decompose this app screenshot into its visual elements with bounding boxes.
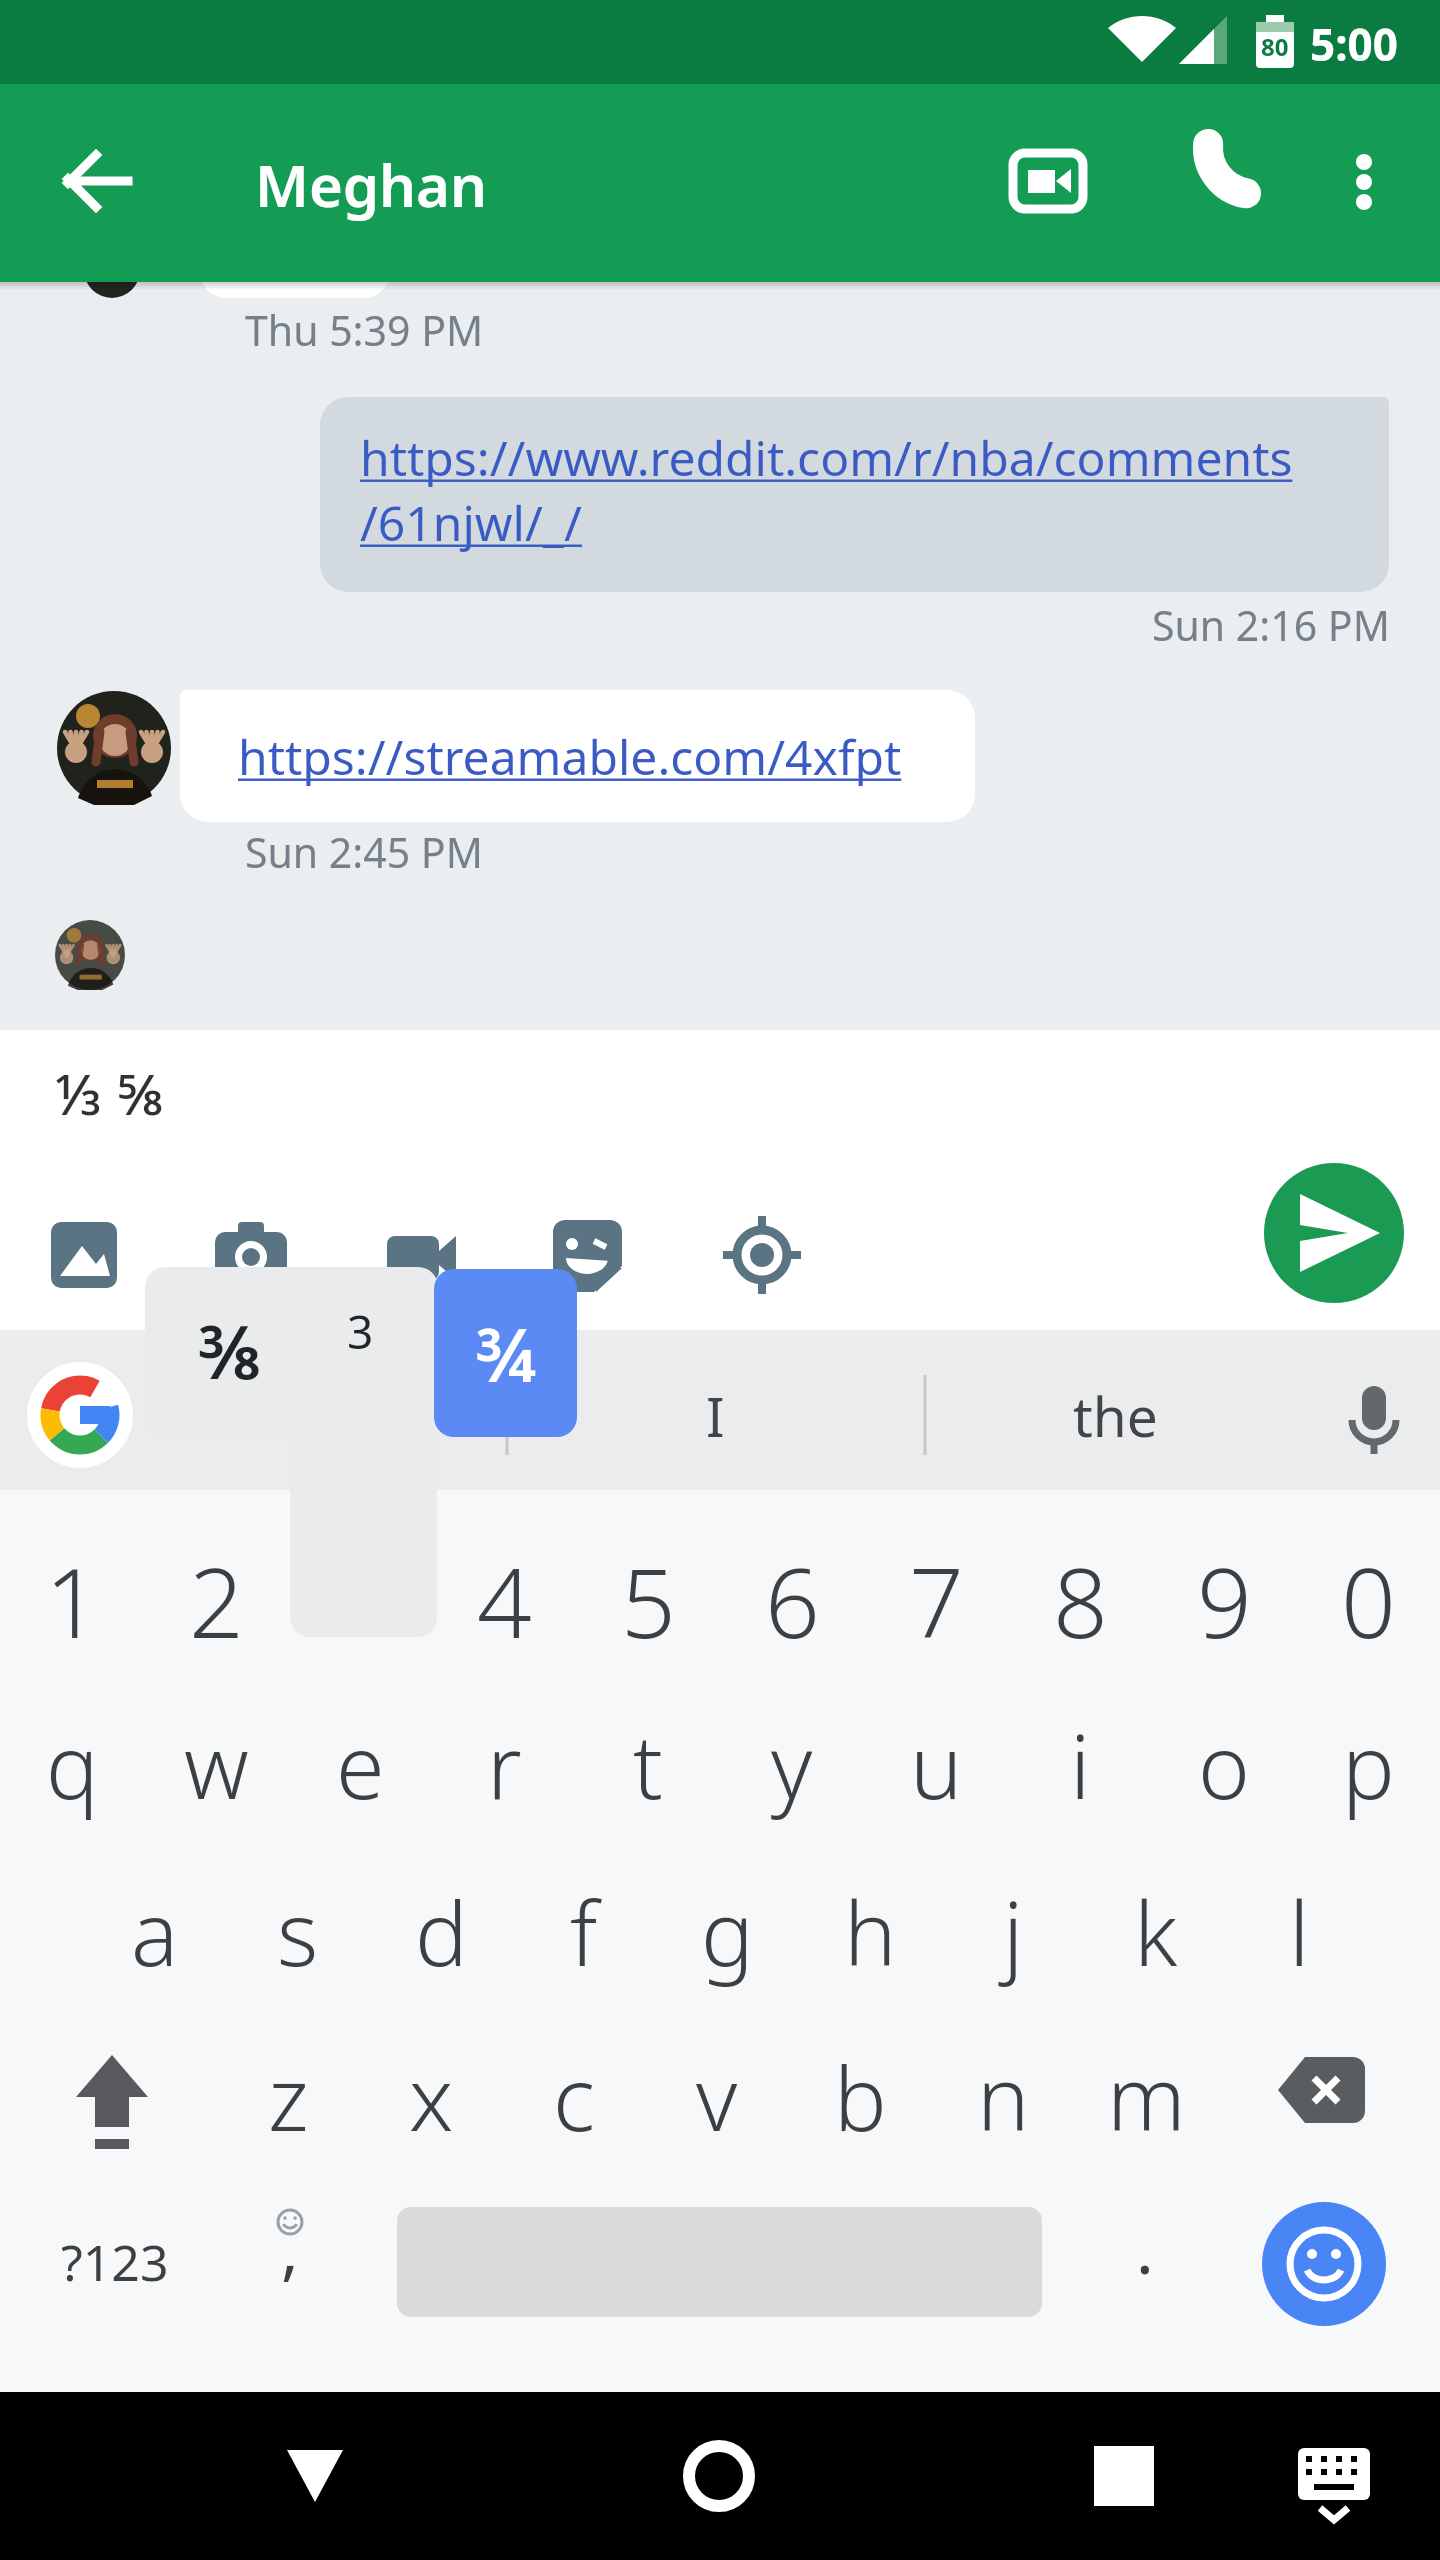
button[interactable]: https://www.reddit.com/r/nba/comments bbox=[320, 397, 1389, 592]
button[interactable] bbox=[931, 2027, 1075, 2167]
staticText: I bbox=[706, 1378, 725, 1453]
button[interactable] bbox=[369, 1862, 513, 2002]
button[interactable] bbox=[1080, 2192, 1210, 2332]
staticText: 80 bbox=[1261, 30, 1289, 63]
staticText: i bbox=[1070, 1705, 1091, 1825]
staticText: 9 bbox=[1197, 1535, 1252, 1666]
button[interactable] bbox=[576, 1695, 720, 1835]
button[interactable] bbox=[1296, 1695, 1440, 1835]
staticText: https://streamable.com/4xfpt bbox=[238, 724, 902, 789]
button[interactable] bbox=[30, 1200, 140, 1310]
button[interactable] bbox=[359, 2027, 503, 2167]
button[interactable] bbox=[40, 2027, 190, 2167]
staticText: 4 bbox=[477, 1535, 532, 1666]
button[interactable] bbox=[1084, 1862, 1228, 2002]
button[interactable] bbox=[196, 1200, 306, 1310]
button[interactable] bbox=[864, 1530, 1008, 1670]
button[interactable] bbox=[216, 2027, 360, 2167]
button[interactable] bbox=[288, 1530, 432, 1670]
button[interactable] bbox=[1152, 1530, 1296, 1670]
button[interactable] bbox=[0, 1695, 144, 1835]
button[interactable] bbox=[1008, 1530, 1152, 1670]
button[interactable] bbox=[144, 1530, 288, 1670]
staticText: 7 bbox=[909, 1535, 964, 1666]
button[interactable] bbox=[1054, 2406, 1194, 2546]
staticText: , bbox=[281, 2203, 299, 2293]
button[interactable] bbox=[600, 1350, 830, 1474]
staticText: Meghan bbox=[255, 145, 488, 224]
button[interactable] bbox=[288, 1695, 432, 1835]
staticText: 2 bbox=[189, 1535, 244, 1666]
button[interactable] bbox=[83, 1862, 227, 2002]
staticText: https://www.reddit.com/r/nba/comments bbox=[360, 425, 1293, 490]
staticText: k bbox=[1134, 1872, 1178, 1992]
staticText: r bbox=[487, 1705, 522, 1825]
staticText: ¾ bbox=[475, 1303, 536, 1404]
button[interactable] bbox=[30, 1360, 134, 1464]
button[interactable] bbox=[245, 2406, 385, 2546]
button[interactable] bbox=[512, 1862, 656, 2002]
staticText: p bbox=[1342, 1705, 1395, 1825]
button[interactable] bbox=[1250, 2027, 1400, 2167]
button[interactable] bbox=[645, 2027, 789, 2167]
button[interactable] bbox=[0, 1530, 144, 1670]
button[interactable] bbox=[144, 1695, 288, 1835]
staticText: Sun 2:45 PM bbox=[245, 824, 483, 880]
button[interactable] bbox=[941, 1862, 1085, 2002]
button[interactable]: ¾ bbox=[434, 1269, 577, 1437]
button[interactable] bbox=[432, 1695, 576, 1835]
button[interactable] bbox=[720, 1530, 864, 1670]
button[interactable] bbox=[720, 1695, 864, 1835]
button[interactable] bbox=[576, 1530, 720, 1670]
button[interactable] bbox=[1000, 1350, 1230, 1474]
staticText: q bbox=[46, 1705, 99, 1825]
staticText: b bbox=[834, 2037, 887, 2157]
staticText: z bbox=[268, 2037, 309, 2157]
button[interactable] bbox=[864, 1695, 1008, 1835]
button[interactable]: https://streamable.com/4xfpt bbox=[180, 690, 975, 822]
button[interactable] bbox=[1264, 2406, 1404, 2546]
staticText: m bbox=[1107, 2037, 1186, 2157]
button[interactable] bbox=[655, 1862, 799, 2002]
staticText: ⅓ ⅝ bbox=[55, 1055, 165, 1125]
staticText: t bbox=[633, 1705, 663, 1825]
button[interactable] bbox=[1310, 1360, 1420, 1464]
staticText: 8 bbox=[1053, 1535, 1108, 1666]
button[interactable] bbox=[1152, 1695, 1296, 1835]
staticText: x bbox=[409, 2037, 454, 2157]
button[interactable] bbox=[1008, 1695, 1152, 1835]
button[interactable] bbox=[649, 2406, 789, 2546]
button[interactable] bbox=[1264, 1163, 1404, 1303]
button[interactable] bbox=[432, 1530, 576, 1670]
staticText: u bbox=[910, 1705, 963, 1825]
button[interactable] bbox=[1227, 1862, 1371, 2002]
button[interactable] bbox=[798, 1862, 942, 2002]
staticText: Sun 2:16 PM bbox=[1152, 597, 1390, 653]
staticText: 5:00 bbox=[1310, 14, 1398, 70]
staticText: 5 bbox=[621, 1535, 676, 1666]
button[interactable] bbox=[40, 124, 160, 244]
button[interactable] bbox=[532, 1200, 642, 1310]
staticText: Thu 5:39 PM bbox=[245, 302, 484, 358]
staticText: . bbox=[1136, 2203, 1154, 2293]
button[interactable] bbox=[988, 122, 1108, 242]
button[interactable] bbox=[362, 1200, 472, 1310]
staticText: /61njwl/_/ bbox=[360, 490, 582, 555]
button[interactable] bbox=[1074, 2027, 1218, 2167]
button[interactable] bbox=[707, 1200, 817, 1310]
button[interactable] bbox=[40, 2192, 190, 2332]
button[interactable] bbox=[225, 2192, 355, 2332]
button[interactable] bbox=[1296, 1530, 1440, 1670]
button[interactable] bbox=[1304, 122, 1424, 242]
button[interactable] bbox=[502, 2027, 646, 2167]
staticText: the bbox=[1073, 1378, 1158, 1453]
staticText: d bbox=[415, 1872, 468, 1992]
staticText: 6 bbox=[765, 1535, 820, 1666]
staticText: s bbox=[277, 1872, 319, 1992]
button[interactable] bbox=[1157, 122, 1277, 242]
button[interactable] bbox=[1262, 2202, 1386, 2326]
staticText: f bbox=[570, 1872, 598, 1992]
button[interactable] bbox=[788, 2027, 932, 2167]
button[interactable] bbox=[226, 1862, 370, 2002]
